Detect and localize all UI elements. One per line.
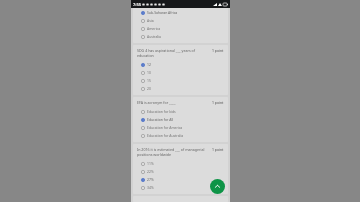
button[interactable]: SDG 4 has aspirational ___ years of educ…	[133, 45, 228, 95]
staticText: Education for kids	[147, 109, 176, 114]
staticText: SDG 4 has aspirational ___ years of educ…	[137, 48, 210, 58]
button[interactable]: 10	[137, 69, 224, 76]
staticText: 15	[147, 78, 151, 83]
button[interactable]: Scroll to top	[210, 179, 225, 194]
staticText: 1 point	[212, 100, 224, 105]
button[interactable]: EFA is acronym for ____	[133, 97, 228, 142]
staticText: In 2016 it is estimated ___ of manageria…	[137, 147, 210, 157]
button[interactable]: Education for America	[137, 124, 224, 131]
staticText: Education for America	[147, 125, 183, 130]
staticText: America	[147, 26, 161, 31]
button[interactable]: 27%	[137, 176, 224, 183]
button[interactable]: 15	[137, 77, 224, 84]
button[interactable]: 20	[137, 85, 224, 92]
staticText: 34%	[147, 185, 154, 190]
staticText: 22%	[147, 169, 154, 174]
staticText: 10	[147, 70, 151, 75]
staticText: 27%	[147, 177, 154, 182]
button[interactable]: In 2016 it is estimated ___ of manageria…	[133, 144, 228, 194]
button[interactable]: Asia	[137, 17, 224, 24]
staticText: EFA is acronym for ____	[137, 100, 210, 105]
button[interactable]: Sub-Saharan Africa	[137, 9, 224, 16]
button[interactable]: Education for All	[137, 116, 224, 123]
staticText: Australia	[147, 34, 161, 39]
button[interactable]: Sub-Saharan Africa	[133, 8, 228, 43]
button[interactable]: America	[137, 25, 224, 32]
button[interactable]: Australia	[137, 33, 224, 40]
button[interactable]: 12	[137, 61, 224, 68]
staticText: Sub-Saharan Africa	[147, 10, 178, 15]
staticText: 1 point	[212, 48, 224, 53]
staticText: 12	[147, 62, 151, 67]
staticText: Education for Australia	[147, 133, 184, 138]
staticText: 1 point	[212, 147, 224, 152]
button[interactable]: 11%	[137, 160, 224, 167]
staticText: 7:55	[133, 2, 141, 7]
button[interactable]: Education for kids	[137, 108, 224, 115]
staticText: 11%	[147, 161, 154, 166]
staticText: Education for All	[147, 117, 174, 122]
button[interactable]: Education for Australia	[137, 132, 224, 139]
button[interactable]: 22%	[137, 168, 224, 175]
staticText: Asia	[147, 18, 154, 23]
button[interactable]: 34%	[137, 184, 224, 191]
staticText: 20	[147, 86, 151, 91]
